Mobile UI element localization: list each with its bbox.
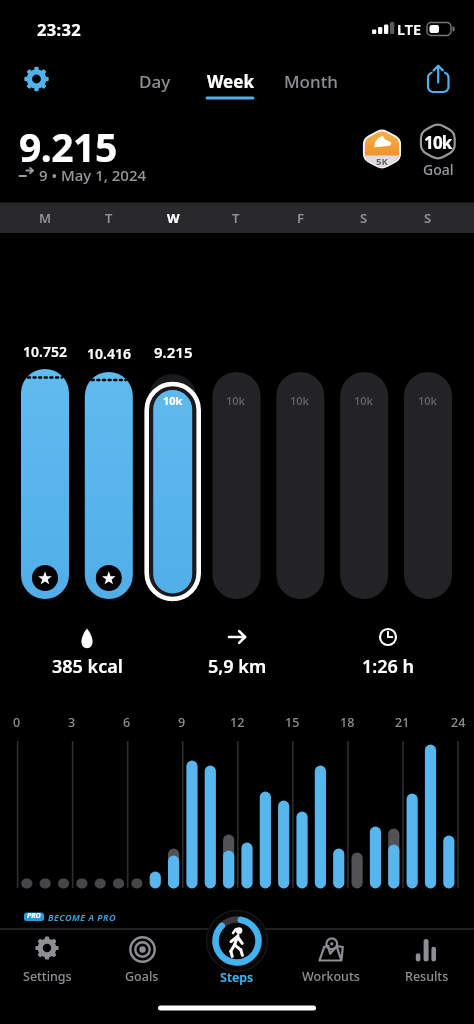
button[interactable]: Workouts (286, 961, 376, 991)
staticText: PRO (27, 911, 41, 921)
staticText: 9.215 (19, 120, 117, 173)
staticText: 10k (418, 393, 438, 408)
staticText: 10k (354, 393, 374, 408)
staticText: 10.752 (23, 342, 67, 361)
staticText: 3 (68, 714, 76, 731)
button[interactable]: Month (271, 66, 351, 96)
staticText: Month (284, 70, 338, 93)
staticText: 10k (226, 393, 246, 408)
button[interactable] (22, 64, 52, 94)
staticText: 0 (13, 714, 21, 731)
staticText: 5K (376, 155, 388, 168)
staticText: 12 (230, 714, 245, 731)
button[interactable]: Week (190, 66, 270, 96)
staticText: 10.416 (87, 344, 131, 363)
staticText: Goal (423, 160, 454, 179)
staticText: S (360, 209, 368, 227)
staticText: Day (139, 70, 171, 93)
button[interactable] (206, 911, 268, 973)
staticText: S (424, 209, 432, 227)
staticText: 6 (123, 714, 131, 731)
staticText: Week (207, 70, 254, 93)
button[interactable]: Results (382, 961, 472, 991)
staticText: T (232, 209, 240, 227)
staticText: 10k (424, 131, 452, 154)
button[interactable]: Steps (192, 962, 282, 992)
staticText: 9 • May 1, 2024 (39, 165, 147, 185)
staticText: 15 (285, 714, 300, 731)
staticText: 9.215 (154, 342, 193, 362)
staticText: 24 (451, 714, 466, 731)
button[interactable]: Goals (97, 961, 187, 991)
staticText: Steps (220, 969, 254, 986)
staticText: Settings (23, 968, 72, 985)
staticText: T (105, 209, 113, 227)
staticText: 18 (340, 714, 355, 731)
staticText: LTE (397, 19, 421, 39)
staticText: 10k (290, 393, 310, 408)
button[interactable] (423, 62, 455, 96)
staticText: 21 (395, 714, 410, 731)
staticText: Workouts (302, 968, 360, 985)
staticText: 1:26 h (362, 654, 415, 679)
staticText: W (167, 209, 180, 227)
staticText: F (297, 209, 304, 227)
staticText: 385 kcal (52, 654, 123, 679)
button[interactable]: BECOME A PRO (48, 908, 158, 925)
staticText: Results (405, 968, 449, 985)
button[interactable]: Settings (2, 961, 92, 991)
staticText: BECOME A PRO (48, 911, 117, 923)
staticText: 23:32 (37, 18, 81, 40)
staticText: M (39, 209, 52, 227)
staticText: 9 (178, 714, 186, 731)
staticText: 10k (163, 393, 183, 408)
staticText: 5,9 km (208, 654, 267, 679)
button[interactable]: Day (120, 66, 190, 96)
staticText: Goals (125, 968, 159, 985)
